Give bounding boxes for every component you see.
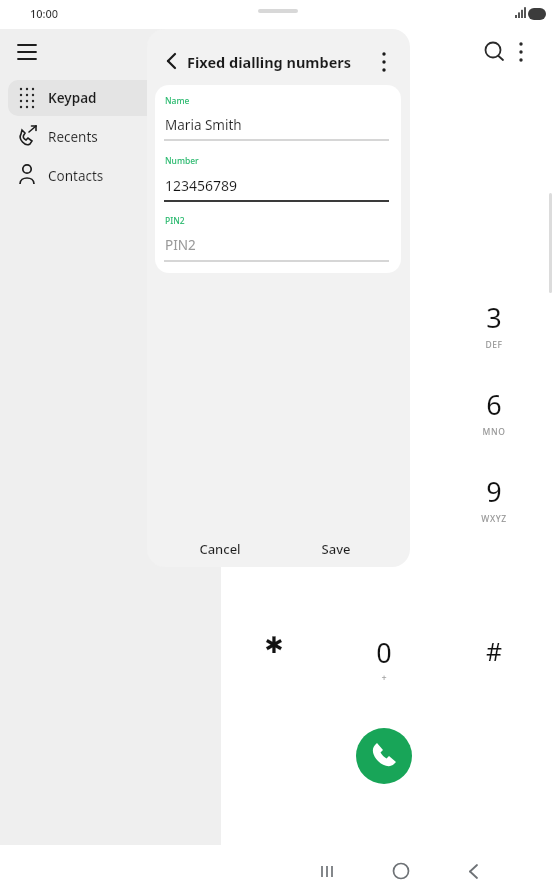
staticText: #	[454, 634, 534, 674]
button[interactable]	[339, 624, 429, 698]
button[interactable]: Search	[475, 33, 513, 71]
button[interactable]	[288, 533, 384, 565]
staticText: 123456789	[165, 176, 365, 198]
button[interactable]: Call	[356, 728, 412, 784]
button[interactable]	[339, 463, 429, 537]
staticText: 6	[454, 386, 534, 429]
button[interactable]: Back	[438, 850, 512, 888]
staticText: Save	[296, 540, 376, 561]
button[interactable]	[8, 120, 213, 156]
staticText: DEF	[454, 339, 534, 353]
staticText: JKL	[344, 426, 424, 440]
button[interactable]: More options	[370, 44, 400, 76]
staticText: Keypad	[48, 89, 168, 111]
staticText: Recents	[48, 128, 168, 150]
staticText: 9	[454, 473, 534, 516]
button[interactable]: More options	[504, 33, 538, 71]
button[interactable]	[449, 624, 539, 698]
staticText: ✱	[234, 632, 314, 669]
staticText: Fixed dialling numbers	[187, 52, 377, 75]
button[interactable]	[449, 289, 539, 363]
staticText: Name	[165, 95, 285, 109]
staticText: PIN2	[165, 236, 365, 258]
staticText: WXYZ	[454, 513, 534, 527]
staticText: Number	[165, 155, 285, 169]
staticText: MNO	[454, 426, 534, 440]
staticText: ABC	[344, 339, 424, 353]
button[interactable]	[339, 289, 429, 363]
button[interactable]: Recents	[290, 850, 364, 888]
button[interactable]	[8, 159, 213, 195]
button[interactable]	[449, 463, 539, 537]
staticText: Contacts	[48, 167, 168, 189]
button[interactable]	[172, 533, 268, 565]
staticText: TUV	[344, 513, 424, 527]
button[interactable]: Back	[155, 44, 187, 76]
button[interactable]	[8, 80, 213, 116]
staticText: 8	[344, 473, 424, 516]
button[interactable]: Home	[364, 850, 438, 888]
staticText: Maria Smith	[165, 116, 365, 138]
staticText: 3	[454, 299, 534, 342]
staticText: 5	[344, 386, 424, 429]
staticText: 10:00	[30, 6, 100, 24]
staticText: 0	[344, 634, 424, 677]
staticText: Cancel	[180, 540, 260, 561]
staticText: PIN2	[165, 215, 285, 229]
button[interactable]	[339, 376, 429, 450]
staticText: +	[344, 671, 424, 685]
button[interactable]	[449, 376, 539, 450]
button[interactable]	[229, 624, 319, 698]
staticText: 2	[344, 299, 424, 342]
